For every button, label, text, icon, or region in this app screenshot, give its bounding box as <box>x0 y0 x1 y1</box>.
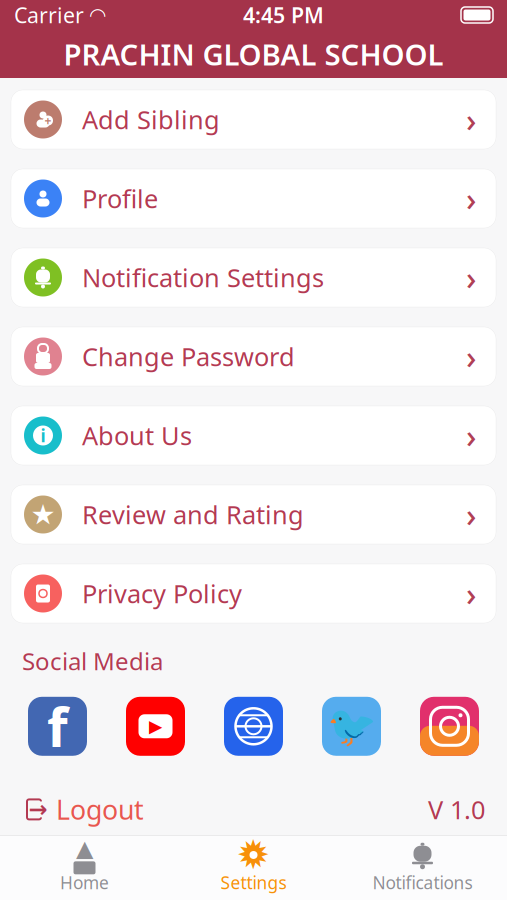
button[interactable]: → <box>22 792 144 827</box>
staticText: Profile <box>82 182 158 215</box>
staticText: Notifications <box>372 871 472 894</box>
staticText: › <box>466 572 476 615</box>
staticText: ▶ <box>149 716 162 736</box>
staticText: › <box>466 98 476 141</box>
staticText: V 1.0 <box>428 793 485 826</box>
staticText: ◠ <box>89 4 106 26</box>
staticText: 4:45 PM <box>243 1 324 29</box>
staticText: ★ <box>30 499 55 530</box>
staticText: Home <box>60 871 109 894</box>
button[interactable]: Facebook <box>28 691 87 762</box>
button[interactable]: + <box>11 90 496 149</box>
staticText: i <box>40 424 45 447</box>
staticText: About Us <box>82 419 192 452</box>
button[interactable]: Notification Settings <box>11 248 496 307</box>
staticText: Settings <box>220 871 286 894</box>
staticText: Change Password <box>82 340 295 373</box>
staticText: Carrier <box>14 1 84 29</box>
button[interactable]: Twitter <box>322 697 381 756</box>
staticText: Review and Rating <box>82 498 304 531</box>
button[interactable]: Notifications <box>338 837 507 899</box>
staticText: Notification Settings <box>82 261 324 294</box>
button[interactable]: YouTube <box>126 697 185 756</box>
staticText: ✹ <box>236 832 270 878</box>
button[interactable]: Profile <box>11 169 496 228</box>
button[interactable]: Change Password <box>11 327 496 386</box>
button[interactable]: ★ <box>11 485 496 544</box>
staticText: 🐦 <box>326 703 376 749</box>
staticText: › <box>466 414 476 457</box>
staticText: Privacy Policy <box>82 577 242 610</box>
staticText: › <box>466 335 476 378</box>
staticText: Add Sibling <box>82 103 220 136</box>
button[interactable]: i <box>11 406 496 465</box>
button[interactable]: ✹ <box>169 837 338 899</box>
staticText: › <box>466 493 476 536</box>
staticText: ▲ <box>76 836 93 861</box>
button[interactable]: Instagram <box>420 697 479 756</box>
staticText: PRACHIN GLOBAL SCHOOL <box>63 34 443 73</box>
button[interactable]: Website <box>224 697 283 756</box>
staticText: f <box>47 691 68 762</box>
staticText: › <box>466 256 476 299</box>
staticText: Social Media <box>22 645 163 677</box>
staticText: → <box>28 796 47 822</box>
staticText: › <box>466 177 476 220</box>
staticText: + <box>44 113 51 128</box>
staticText: Logout <box>56 792 144 827</box>
button[interactable]: ▲ <box>0 837 169 899</box>
button[interactable]: Privacy Policy <box>11 564 496 623</box>
